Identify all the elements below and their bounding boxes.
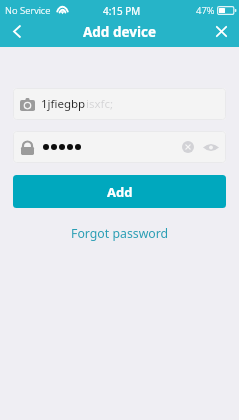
button[interactable]: Back — [0, 19, 34, 45]
staticText: Add device — [83, 23, 157, 41]
staticText: isxfc; — [86, 96, 114, 112]
staticText: Forgot password — [71, 225, 169, 242]
button[interactable]: Clear text — [177, 134, 199, 160]
button[interactable]: Add — [13, 175, 226, 208]
staticText: Add — [107, 183, 133, 201]
staticText: 47% — [196, 4, 215, 17]
button[interactable]: 1jfiegbp — [13, 88, 226, 120]
button[interactable]: Clear text — [13, 131, 226, 163]
staticText: No Service — [5, 4, 51, 17]
button[interactable]: Show password — [200, 134, 222, 160]
staticText: 4:15 PM — [103, 4, 141, 17]
button[interactable]: Close — [205, 19, 239, 45]
staticText: 1jfiegbp — [41, 96, 86, 112]
button[interactable]: Forgot password — [63, 221, 177, 246]
